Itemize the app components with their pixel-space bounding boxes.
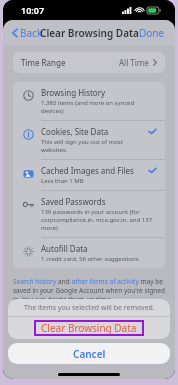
button[interactable]: Cookies, Site Data <box>13 121 165 159</box>
staticText: Cached Images and Files <box>41 165 134 176</box>
button[interactable]: Cancel <box>8 343 170 364</box>
staticText: Back <box>20 26 43 40</box>
staticText: Clear Browsing Data <box>40 26 139 40</box>
button[interactable]: Back <box>8 23 47 43</box>
button[interactable]: Cached Images and Files <box>13 160 165 190</box>
staticText: Autofill Data <box>41 243 88 254</box>
button[interactable]: Browsing History <box>13 82 165 120</box>
staticText: Done <box>139 26 165 40</box>
staticText: Time Range <box>21 57 66 68</box>
button[interactable]: Done <box>135 23 169 43</box>
button[interactable]: Time Range <box>13 52 165 73</box>
staticText: This will sign you out of most websites. <box>41 138 144 154</box>
staticText: Cookies, Site Data <box>41 126 109 137</box>
staticText: All Time <box>119 57 149 68</box>
staticText: corpcompliance.in, mca.gov.in, and 137 <box>41 216 153 224</box>
staticText: 139 passwords in your account (for <box>41 208 140 216</box>
staticText: Less than 1 MB <box>41 177 84 185</box>
staticText: Saved Passwords <box>41 196 106 207</box>
staticText: Cancel <box>73 347 106 361</box>
staticText: The items you selected will be removed. <box>24 303 155 313</box>
button[interactable]: Saved Passwords <box>13 191 165 237</box>
staticText: 1 credit card, 56 other suggestions <box>41 255 139 263</box>
staticText: more) <box>41 224 58 232</box>
button[interactable]: Clear Browsing Data <box>8 317 170 339</box>
staticText: To sign out of your Google Account on al… <box>13 311 165 329</box>
staticText: Search history and other forms of activi… <box>13 277 165 304</box>
staticText: Browsing History <box>41 87 106 98</box>
staticText: 1,385 items (and more on synced devices) <box>41 99 157 115</box>
button[interactable]: Autofill Data <box>13 238 165 268</box>
staticText: 10:07 <box>21 4 45 16</box>
staticText: Clear Browsing Data <box>41 321 137 335</box>
